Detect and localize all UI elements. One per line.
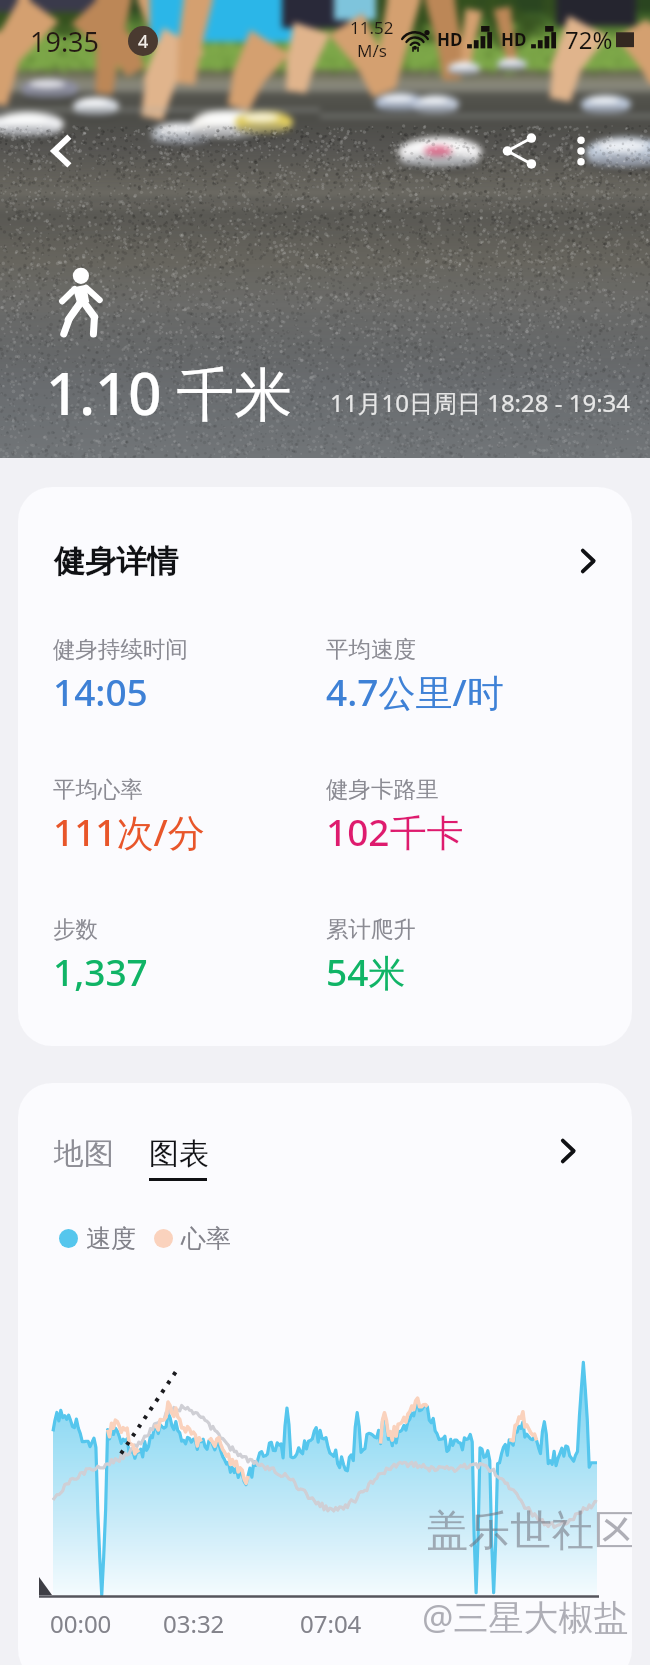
staticText: 1.10 千米 [46, 353, 293, 432]
button[interactable]: 健身详情 [18, 487, 632, 635]
staticText: 00:00 [50, 1607, 112, 1640]
staticText: 图表 [149, 1135, 209, 1173]
staticText: 健身持续时间 [53, 635, 188, 663]
button[interactable]: Share [489, 120, 551, 182]
staticText: 心率 [181, 1223, 231, 1254]
button[interactable]: More options [550, 120, 612, 182]
staticText: 1,337 [53, 946, 148, 996]
staticText: 步数 [53, 915, 98, 943]
staticText: 健身卡路里 [326, 775, 439, 803]
button[interactable]: Open chart details [538, 1121, 598, 1181]
button[interactable]: 地图 [38, 1127, 130, 1181]
staticText: 平均速度 [326, 635, 416, 663]
staticText: 03:32 [163, 1607, 225, 1640]
staticText: 累计爬升 [326, 915, 416, 943]
staticText: 72% [565, 23, 613, 56]
button[interactable]: 图表 [133, 1127, 225, 1189]
staticText: 健身详情 [54, 542, 178, 581]
staticText: M/s [357, 39, 387, 62]
staticText: 54米 [326, 946, 406, 997]
staticText: 102千卡 [326, 806, 464, 857]
staticText: 4 [138, 29, 149, 54]
staticText: 盖乐世社区 [426, 1505, 632, 1558]
staticText: 19:35 [30, 23, 100, 60]
staticText: HD [501, 28, 527, 51]
staticText: 11月10日周日 18:28 - 19:34 [330, 386, 631, 419]
staticText: 11.52 [350, 16, 394, 39]
staticText: @三星大椒盐 [422, 1593, 629, 1641]
button[interactable]: Back [32, 120, 94, 182]
staticText: 平均心率 [53, 775, 143, 803]
staticText: 速度 [86, 1223, 136, 1254]
staticText: 地图 [54, 1135, 114, 1173]
staticText: HD [437, 28, 463, 51]
staticText: 111次/分 [53, 806, 205, 857]
staticText: 14:05 [53, 666, 148, 716]
staticText: 07:04 [300, 1607, 362, 1640]
staticText: 4.7公里/时 [326, 666, 504, 717]
